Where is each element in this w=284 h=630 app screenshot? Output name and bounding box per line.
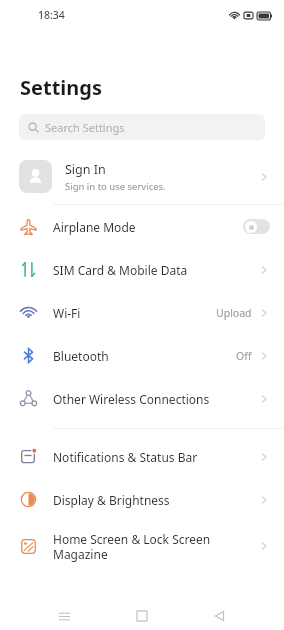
staticText: Upload: [216, 306, 252, 320]
button[interactable]: Search Settings: [19, 114, 265, 140]
staticText: Wi-Fi: [53, 305, 216, 321]
button[interactable]: Back: [206, 602, 234, 630]
staticText: Display & Brightness: [53, 492, 258, 508]
button[interactable]: Sign In: [0, 149, 284, 204]
staticText: Home Screen & Lock Screen Magazine: [53, 531, 258, 562]
staticText: Sign in to use services.: [65, 180, 166, 193]
staticText: Settings: [20, 74, 102, 101]
button[interactable]: Airplane Mode: [0, 205, 284, 248]
staticText: 18:34: [38, 8, 65, 22]
staticText: Sign In: [65, 161, 106, 178]
button[interactable]: Notifications & Status Bar: [0, 435, 284, 478]
button[interactable]: Recents: [50, 602, 78, 630]
staticText: SIM Card & Mobile Data: [53, 262, 258, 278]
staticText: Off: [236, 349, 252, 363]
button[interactable]: Other Wireless Connections: [0, 377, 284, 420]
staticText: Airplane Mode: [53, 219, 243, 235]
button[interactable]: Bluetooth: [0, 334, 284, 377]
button[interactable]: Airplane mode toggle: [243, 219, 270, 234]
button[interactable]: Home: [128, 602, 156, 630]
staticText: Search Settings: [45, 120, 125, 135]
button[interactable]: Home Screen & Lock Screen Magazine: [0, 521, 284, 571]
staticText: Notifications & Status Bar: [53, 449, 258, 465]
staticText: Other Wireless Connections: [53, 391, 258, 407]
button[interactable]: Wi-Fi: [0, 291, 284, 334]
button[interactable]: Display & Brightness: [0, 478, 284, 521]
staticText: Bluetooth: [53, 348, 236, 364]
button[interactable]: SIM Card & Mobile Data: [0, 248, 284, 291]
